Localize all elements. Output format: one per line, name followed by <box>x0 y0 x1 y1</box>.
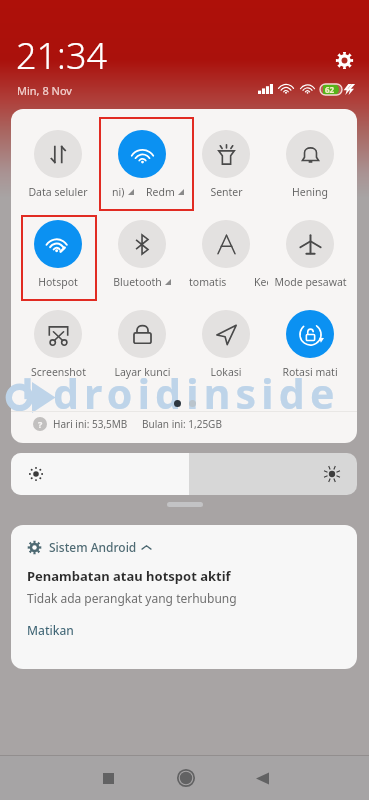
button[interactable]: Brightness <box>11 453 357 495</box>
button[interactable]: Mode pesawat <box>268 220 352 289</box>
staticText: tomatis <box>189 275 227 289</box>
button[interactable]: Matikan <box>27 622 74 638</box>
staticText: ni) <box>112 185 125 199</box>
staticText: Tidak ada perangkat yang terhubung <box>27 590 237 606</box>
button[interactable]: Screenshot <box>16 310 100 379</box>
staticText: Senter <box>210 185 243 199</box>
button[interactable]: Data seluler <box>16 130 100 199</box>
staticText: droidinside <box>53 365 340 421</box>
staticText: Data seluler <box>28 185 88 199</box>
staticText: 62 <box>325 84 335 95</box>
button[interactable]: Hening <box>268 130 352 199</box>
staticText: Layar kunci <box>114 365 171 379</box>
button[interactable]: Rotasi mati <box>268 310 352 379</box>
staticText: 21:34 <box>16 31 108 80</box>
button[interactable]: ? <box>33 413 222 435</box>
staticText: Mode pesawat <box>274 275 347 289</box>
button[interactable]: Hotspot <box>16 220 100 289</box>
button[interactable]: Home <box>147 756 224 800</box>
button[interactable]: ni) <box>100 130 184 199</box>
staticText: Lokasi <box>210 365 242 379</box>
staticText: Bluetooth <box>113 275 162 289</box>
staticText: Penambatan atau hotspot aktif <box>27 567 231 585</box>
staticText: Hari ini: 53,5MB <box>53 417 128 431</box>
button[interactable]: Bluetooth <box>100 220 184 289</box>
button[interactable]: Recents <box>70 756 147 800</box>
staticText: Rotasi mati <box>282 365 338 379</box>
staticText: Sistem Android <box>49 539 137 555</box>
staticText: Hotspot <box>38 275 78 289</box>
staticText: Kec <box>254 275 268 289</box>
button[interactable]: Sistem Android <box>11 525 357 669</box>
button[interactable]: Back <box>224 756 301 800</box>
staticText: Min, 8 Nov <box>17 83 72 98</box>
button[interactable]: Layar kunci <box>100 310 184 379</box>
staticText: Bulan ini: 1,25GB <box>142 417 222 431</box>
button[interactable]: Senter <box>184 130 268 199</box>
button[interactable]: Settings <box>334 50 354 70</box>
staticText: Redm <box>146 185 175 199</box>
button[interactable]: tomatis <box>184 220 268 289</box>
staticText: Hening <box>292 185 328 199</box>
staticText: Screenshot <box>31 365 86 379</box>
staticText: ? <box>38 418 43 430</box>
staticText: Matikan <box>27 622 74 638</box>
button[interactable]: Lokasi <box>184 310 268 379</box>
